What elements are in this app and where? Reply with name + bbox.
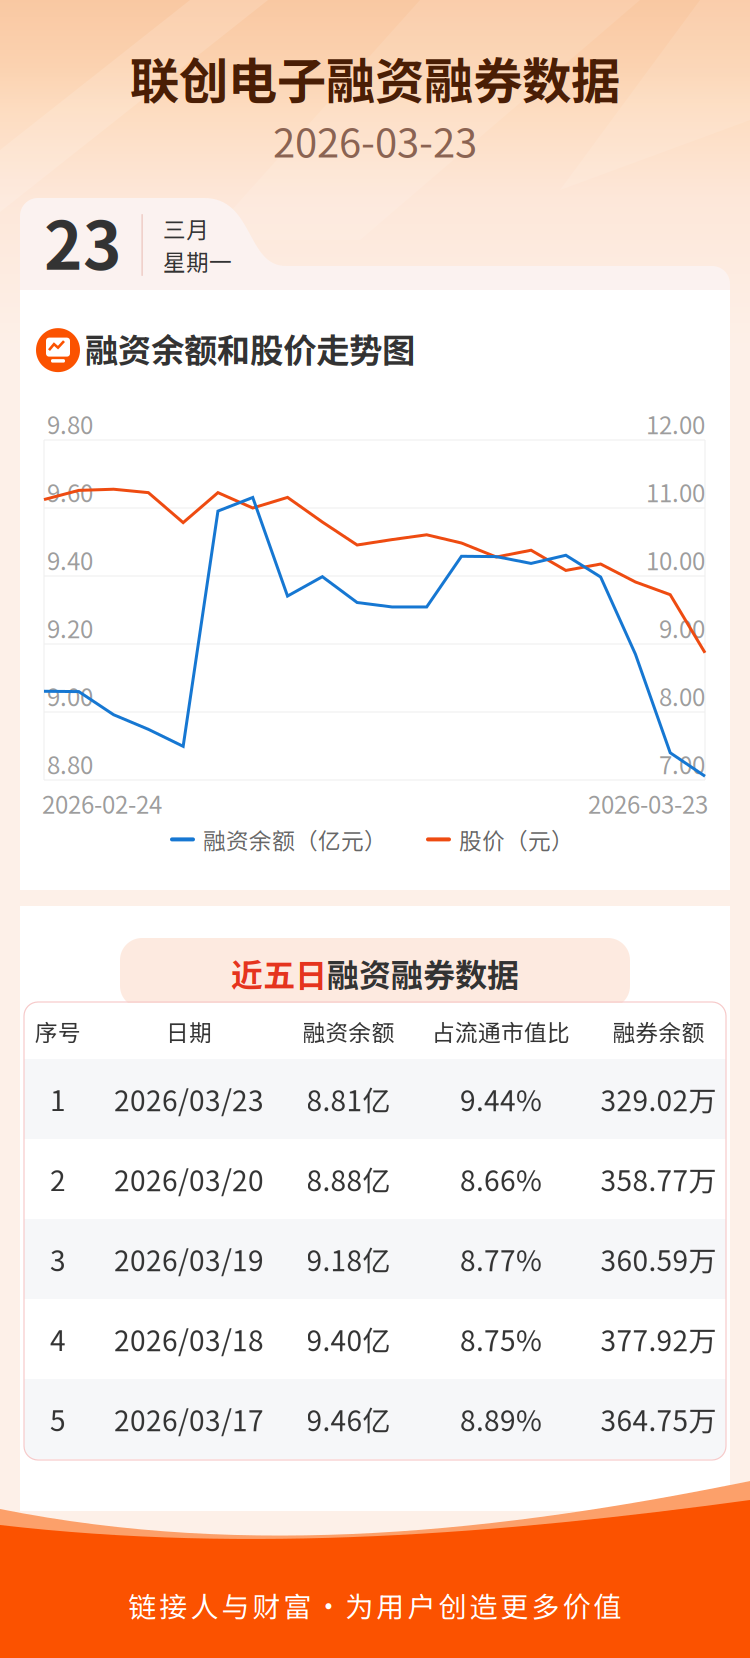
staticText: 近五日 — [231, 950, 327, 996]
staticText: 8.80 — [47, 746, 93, 781]
staticText: 8.66% — [460, 1159, 542, 1199]
staticText: 9.40 — [47, 542, 93, 577]
staticText: 融资余额和股价走势图 — [85, 324, 415, 372]
staticText: 2026/03/18 — [114, 1319, 264, 1359]
staticText: 股价（元） — [459, 823, 574, 856]
staticText: 2026/03/20 — [114, 1159, 264, 1199]
staticText: 日期 — [166, 1015, 212, 1047]
staticText: 占流通市值比 — [432, 1015, 570, 1047]
staticText: 12.00 — [646, 406, 705, 441]
staticText: 360.59万 — [600, 1239, 716, 1279]
staticText: 2026/03/17 — [114, 1399, 264, 1439]
staticText: 融资融券数据 — [327, 950, 519, 996]
staticText: 10.00 — [646, 542, 705, 577]
staticText: 链接人与财富·为用户创造更多价值 — [128, 1585, 621, 1625]
staticText: 2026-03-23 — [273, 111, 477, 169]
staticText: 329.02万 — [600, 1079, 716, 1119]
staticText: 星期一 — [163, 244, 232, 277]
staticText: 3 — [50, 1239, 66, 1279]
staticText: 2 — [50, 1159, 66, 1199]
staticText: 9.44% — [460, 1079, 542, 1119]
staticText: 8.88亿 — [306, 1159, 390, 1199]
staticText: 2026/03/23 — [114, 1079, 264, 1119]
staticText: 8.00 — [659, 678, 705, 713]
button[interactable]: 链接人与财富·为用户创造更多价值 — [0, 1578, 750, 1632]
staticText: 2026-03-23 — [588, 786, 708, 821]
staticText: 联创电子融资融券数据 — [130, 42, 620, 113]
staticText: 9.00 — [659, 610, 705, 645]
staticText: 8.89% — [460, 1399, 542, 1439]
staticText: 9.00 — [47, 678, 93, 713]
staticText: 377.92万 — [600, 1319, 716, 1359]
staticText: 2026-02-24 — [42, 786, 162, 821]
staticText: 9.40亿 — [306, 1319, 390, 1359]
staticText: 9.18亿 — [306, 1239, 390, 1279]
staticText: 9.46亿 — [306, 1399, 390, 1439]
staticText: 358.77万 — [600, 1159, 716, 1199]
staticText: 7.00 — [659, 746, 705, 781]
staticText: 4 — [50, 1319, 66, 1359]
staticText: 8.75% — [460, 1319, 542, 1359]
staticText: 三月 — [163, 212, 209, 245]
staticText: 9.60 — [47, 474, 93, 509]
staticText: 8.81亿 — [306, 1079, 390, 1119]
staticText: 5 — [50, 1399, 66, 1439]
staticText: 2026/03/19 — [114, 1239, 264, 1279]
staticText: 融券余额 — [612, 1015, 704, 1047]
staticText: 364.75万 — [600, 1399, 716, 1439]
staticText: 序号 — [35, 1015, 81, 1047]
staticText: 8.77% — [460, 1239, 542, 1279]
staticText: 融资余额 — [302, 1015, 394, 1047]
staticText: 1 — [50, 1079, 66, 1119]
staticText: 11.00 — [646, 474, 705, 509]
staticText: 23 — [44, 194, 122, 289]
staticText: 融资余额（亿元） — [203, 823, 387, 856]
staticText: 9.80 — [47, 406, 93, 441]
staticText: 9.20 — [47, 610, 93, 645]
